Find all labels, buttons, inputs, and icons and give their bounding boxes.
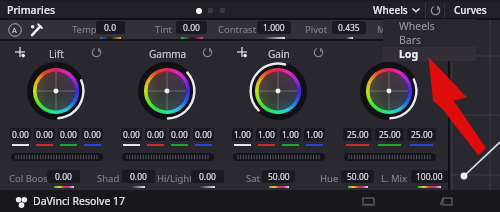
staticText: L. Mix [381,172,408,185]
button[interactable]: Move Lift [14,46,26,58]
staticText: Gain [268,47,290,61]
button[interactable]: 0.00 [47,170,80,183]
staticText: 0.00 [123,129,140,141]
button[interactable]: Clips [361,194,376,209]
staticText: 0.00 [36,129,53,141]
staticText: Bars [399,33,422,47]
button[interactable]: 100.00 [411,170,448,183]
button[interactable]: Move Gain [236,46,248,58]
button[interactable]: Wheels [383,19,476,33]
button[interactable]: Lift wheel [27,62,85,120]
staticText: DaVinci Resolve 17 [33,194,126,208]
button[interactable]: 0.00 [121,128,142,141]
button[interactable]: Offset master wheel [344,153,436,161]
staticText: Sat [246,172,260,185]
button[interactable]: 0.00 [10,128,31,141]
staticText: A [12,25,17,35]
staticText: 1.00 [258,129,275,141]
button[interactable]: Reset [426,2,444,18]
button[interactable]: 50.00 [262,170,295,183]
button[interactable]: Reset Lift [89,45,104,60]
button[interactable]: Gain wheel [249,62,307,120]
staticText: 0.00 [130,171,147,183]
staticText: 25.00 [379,129,401,141]
staticText: 0.00 [12,129,29,141]
button[interactable]: Log [383,47,476,61]
button[interactable]: Reset Gamma [200,45,215,60]
staticText: 100.00 [416,171,443,183]
staticText: Primaries [7,3,56,17]
button[interactable]: 1.00 [232,128,253,141]
button[interactable]: Page 1 [195,7,202,14]
button[interactable]: 50.00 [341,170,374,183]
staticText: Wheels [399,19,435,33]
staticText: 0.00 [199,171,216,183]
staticText: 0.00 [183,22,200,34]
staticText: 0.0 [104,22,117,34]
staticText: Gamma [149,47,187,61]
button[interactable]: Page 2 [207,7,214,14]
button[interactable]: Reset Gain [311,45,326,60]
staticText: 0.00 [171,129,188,141]
staticText: Temp [72,23,97,36]
staticText: Lift [49,47,64,61]
staticText: 0.00 [147,129,164,141]
button[interactable]: Gain master wheel [233,153,325,161]
button[interactable]: Lift master wheel [11,153,103,161]
button[interactable]: 0.435 [332,21,366,34]
button[interactable]: Reset Offset [422,45,437,60]
button[interactable]: Gamma wheel [138,62,196,120]
staticText: Shad [97,172,120,185]
button[interactable]: 1.00 [280,128,301,141]
staticText: Hi/Light [157,172,193,185]
button[interactable]: 0.00 [122,170,155,183]
staticText: 0.00 [60,129,77,141]
staticText: Tint [155,23,173,36]
staticText: Log [399,47,419,61]
staticText: Col Boost [9,172,52,185]
button[interactable]: Bars [383,33,476,47]
staticText: 25.00 [411,129,433,141]
staticText: 50.00 [347,171,369,183]
button[interactable]: 1.000 [257,21,291,34]
staticText: 1.00 [306,129,323,141]
button[interactable]: 0.0 [96,21,125,34]
button[interactable]: 0.00 [34,128,55,141]
staticText: 1.00 [282,129,299,141]
button[interactable]: Color picker [27,21,44,38]
button[interactable]: 0.00 [169,128,190,141]
staticText: 0.00 [55,171,72,183]
staticText: Contrast [218,23,257,36]
staticText: Hue [320,172,339,185]
button[interactable]: 0.00 [82,128,103,141]
button[interactable]: 0.00 [176,21,207,34]
staticText: 0.435 [338,22,360,34]
button[interactable]: Gamma master wheel [122,153,214,161]
button[interactable]: 25.00 [343,128,372,141]
staticText: 50.00 [268,171,290,183]
staticText: 25.00 [347,129,369,141]
button[interactable]: 0.00 [191,170,224,183]
staticText: Wheels [373,3,408,17]
staticText: 0.00 [195,129,212,141]
button[interactable]: Page 3 [219,7,226,14]
button[interactable]: 25.00 [407,128,436,141]
staticText: Curves [454,3,487,17]
button[interactable]: 0.00 [58,128,79,141]
button[interactable]: Offset wheel [360,62,418,120]
staticText: Mid/D [377,23,405,36]
staticText: 1.00 [234,129,251,141]
button[interactable]: Curves [454,3,487,17]
staticText: Pivot [305,23,328,36]
button[interactable]: 0.00 [193,128,214,141]
button[interactable]: Auto balance [6,21,23,38]
button[interactable]: 1.00 [256,128,277,141]
staticText: 1.000 [263,22,285,34]
button[interactable]: 1.00 [304,128,325,141]
button[interactable]: 0.00 [145,128,166,141]
button[interactable]: 25.00 [375,128,404,141]
button[interactable]: Wheels [373,3,420,17]
button[interactable]: Gallery [440,194,455,209]
staticText: 0.00 [84,129,101,141]
